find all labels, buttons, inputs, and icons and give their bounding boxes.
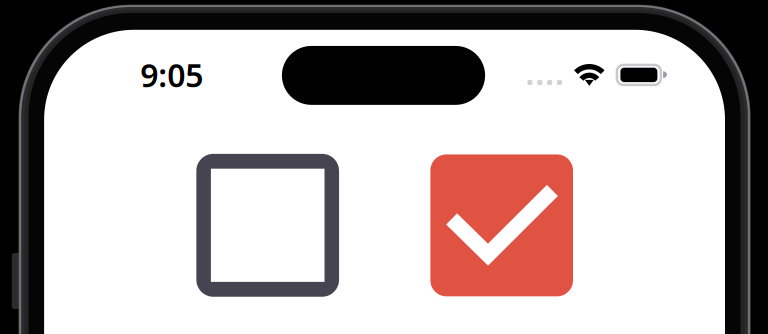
button[interactable]: Checked checkbox bbox=[430, 154, 573, 296]
button[interactable]: Unchecked checkbox bbox=[196, 154, 339, 297]
staticText: 9:05 bbox=[140, 54, 203, 96]
